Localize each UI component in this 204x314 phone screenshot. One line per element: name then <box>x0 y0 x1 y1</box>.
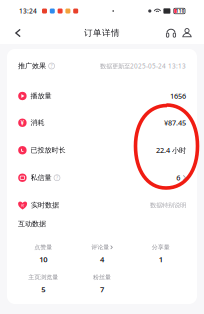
staticText: 6 <box>176 173 180 183</box>
staticText: 1656 <box>170 91 186 101</box>
button[interactable]: 数据特别说明 <box>150 201 186 209</box>
staticText: ? <box>56 175 58 181</box>
staticText: 互动数据 <box>18 219 46 228</box>
staticText: 分享量 <box>152 243 170 251</box>
staticText: 主页浏览量 <box>28 273 58 281</box>
staticText: 5 <box>41 284 45 294</box>
staticText: 订单详情 <box>84 28 120 38</box>
button[interactable]: 分享量 <box>131 243 190 264</box>
staticText: 10 <box>39 254 47 264</box>
staticText: 实时数据 <box>31 201 59 210</box>
button[interactable]: ¥ <box>7 109 197 136</box>
button[interactable]: Account <box>179 22 195 44</box>
button[interactable]: 主页浏览量 <box>14 273 73 294</box>
button[interactable]: 私信量 <box>7 164 197 191</box>
staticText: ? <box>51 63 53 69</box>
staticText: 7 <box>100 284 104 294</box>
button[interactable]: 已投放时长 <box>7 136 197 164</box>
staticText: 评论量 <box>91 243 109 251</box>
staticText: 数据更新至2025-05-24 13:13 <box>100 62 186 70</box>
staticText: 22.4 小时 <box>156 145 186 155</box>
staticText: 1 <box>159 254 163 264</box>
staticText: 点赞量 <box>34 243 52 251</box>
staticText: 推广效果 <box>18 61 46 70</box>
button[interactable]: 粉丝量 <box>73 273 131 294</box>
button[interactable]: Customer service <box>163 22 179 44</box>
staticText: 私信量 <box>31 173 52 182</box>
staticText: 消耗 <box>31 118 45 127</box>
staticText: 4 <box>100 254 104 264</box>
button[interactable]: Back <box>8 22 28 44</box>
staticText: 110 <box>176 8 185 14</box>
button[interactable]: 播放量 <box>7 83 197 109</box>
staticText: ¥87.45 <box>164 118 186 128</box>
staticText: ¥ <box>20 118 24 127</box>
staticText: 已投放时长 <box>31 146 66 155</box>
staticText: 时 <box>21 203 24 208</box>
button[interactable]: 评论量 <box>73 243 131 264</box>
staticText: 播放量 <box>31 91 52 100</box>
staticText: 数据特别说明 <box>150 201 186 209</box>
staticText: 粉丝量 <box>93 273 111 281</box>
button[interactable]: 点赞量 <box>14 243 73 264</box>
staticText: 13:24 <box>19 6 37 15</box>
